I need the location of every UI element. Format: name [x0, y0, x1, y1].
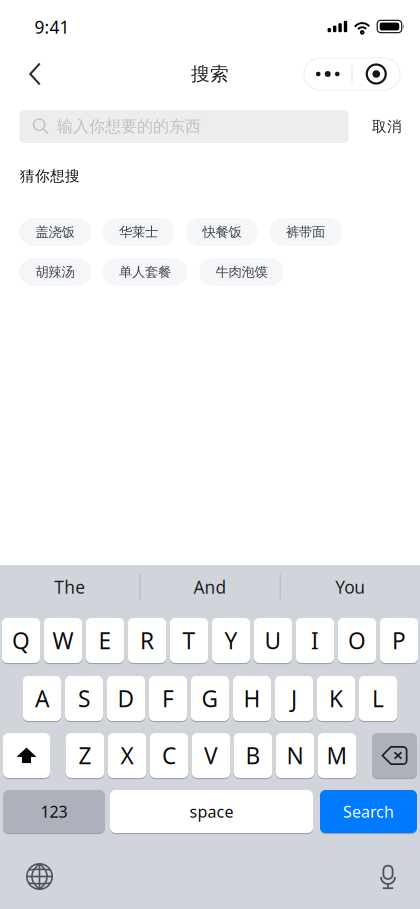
staticText: Q: [12, 625, 30, 655]
button[interactable]: 单人套餐: [102, 258, 187, 286]
staticText: 9:41: [34, 15, 69, 38]
staticText: E: [98, 625, 111, 655]
button[interactable]: B: [234, 733, 272, 778]
button[interactable]: O: [338, 618, 376, 663]
button[interactable]: W: [44, 618, 82, 663]
staticText: G: [201, 683, 218, 713]
staticText: I: [311, 625, 319, 655]
button[interactable]: A: [23, 676, 61, 721]
button[interactable]: Y: [212, 618, 250, 663]
button[interactable]: space: [110, 790, 313, 833]
staticText: 搜索: [191, 62, 229, 85]
staticText: M: [326, 740, 347, 770]
staticText: 输入你想要的的东西: [57, 117, 201, 136]
staticText: T: [182, 625, 195, 655]
staticText: 牛肉泡馍: [215, 264, 267, 280]
staticText: The: [54, 575, 85, 598]
staticText: 123: [40, 801, 67, 822]
staticText: 裤带面: [286, 224, 325, 240]
staticText: O: [348, 625, 366, 655]
staticText: 猜你想搜: [20, 167, 80, 185]
staticText: 盖浇饭: [35, 224, 74, 240]
button[interactable]: K: [317, 676, 355, 721]
button[interactable]: 123: [3, 790, 105, 833]
button[interactable]: Z: [66, 733, 104, 778]
button[interactable]: G: [191, 676, 229, 721]
button[interactable]: V: [192, 733, 230, 778]
staticText: You: [335, 575, 365, 598]
staticText: Y: [224, 625, 237, 655]
staticText: 取消: [372, 117, 402, 135]
button[interactable]: Search: [320, 790, 417, 833]
button[interactable]: [372, 733, 417, 778]
button[interactable]: Dictate: [366, 855, 410, 899]
button[interactable]: U: [254, 618, 292, 663]
button[interactable]: 牛肉泡馍: [199, 258, 284, 286]
button[interactable]: And: [140, 565, 280, 609]
staticText: X: [120, 740, 133, 770]
staticText: V: [204, 740, 218, 770]
staticText: B: [245, 740, 260, 770]
button[interactable]: S: [65, 676, 103, 721]
staticText: K: [329, 683, 343, 713]
button[interactable]: 裤带面: [269, 218, 341, 246]
staticText: D: [117, 683, 134, 713]
button[interactable]: E: [86, 618, 124, 663]
button[interactable]: I: [296, 618, 334, 663]
button[interactable]: 胡辣汤: [19, 258, 91, 286]
button[interactable]: C: [150, 733, 188, 778]
staticText: H: [243, 683, 260, 713]
button[interactable]: R: [128, 618, 166, 663]
button[interactable]: [3, 733, 50, 778]
staticText: N: [286, 740, 303, 770]
button[interactable]: J: [275, 676, 313, 721]
staticText: F: [162, 683, 174, 713]
staticText: P: [392, 625, 406, 655]
button[interactable]: 华莱士: [102, 218, 174, 246]
staticText: W: [52, 625, 73, 655]
staticText: L: [372, 683, 384, 713]
staticText: 快餐饭: [202, 224, 241, 240]
button[interactable]: F: [149, 676, 187, 721]
button[interactable]: T: [170, 618, 208, 663]
staticText: 华莱士: [119, 224, 158, 240]
button[interactable]: 盖浇饭: [19, 218, 91, 246]
button[interactable]: N: [276, 733, 314, 778]
button[interactable]: P: [380, 618, 418, 663]
staticText: 单人套餐: [119, 264, 171, 280]
button[interactable]: M: [318, 733, 356, 778]
staticText: U: [264, 625, 281, 655]
staticText: 胡辣汤: [35, 264, 74, 280]
staticText: C: [162, 740, 176, 770]
staticText: A: [35, 683, 49, 713]
staticText: space: [189, 801, 233, 822]
staticText: And: [193, 575, 226, 598]
staticText: R: [140, 625, 154, 655]
button[interactable]: L: [359, 676, 397, 721]
button[interactable]: Mini program menu: [304, 58, 400, 90]
button[interactable]: You: [281, 565, 420, 609]
button[interactable]: H: [233, 676, 271, 721]
button[interactable]: Switch keyboard: [17, 854, 61, 898]
button[interactable]: D: [107, 676, 145, 721]
button[interactable]: Q: [2, 618, 40, 663]
button[interactable]: The: [0, 565, 139, 609]
staticText: J: [291, 683, 297, 713]
button[interactable]: Back: [12, 52, 58, 96]
staticText: Search: [343, 801, 394, 822]
button[interactable]: X: [108, 733, 146, 778]
button[interactable]: 取消: [361, 110, 413, 143]
staticText: S: [78, 683, 90, 713]
button[interactable]: 快餐饭: [186, 218, 258, 246]
staticText: Z: [78, 740, 91, 770]
